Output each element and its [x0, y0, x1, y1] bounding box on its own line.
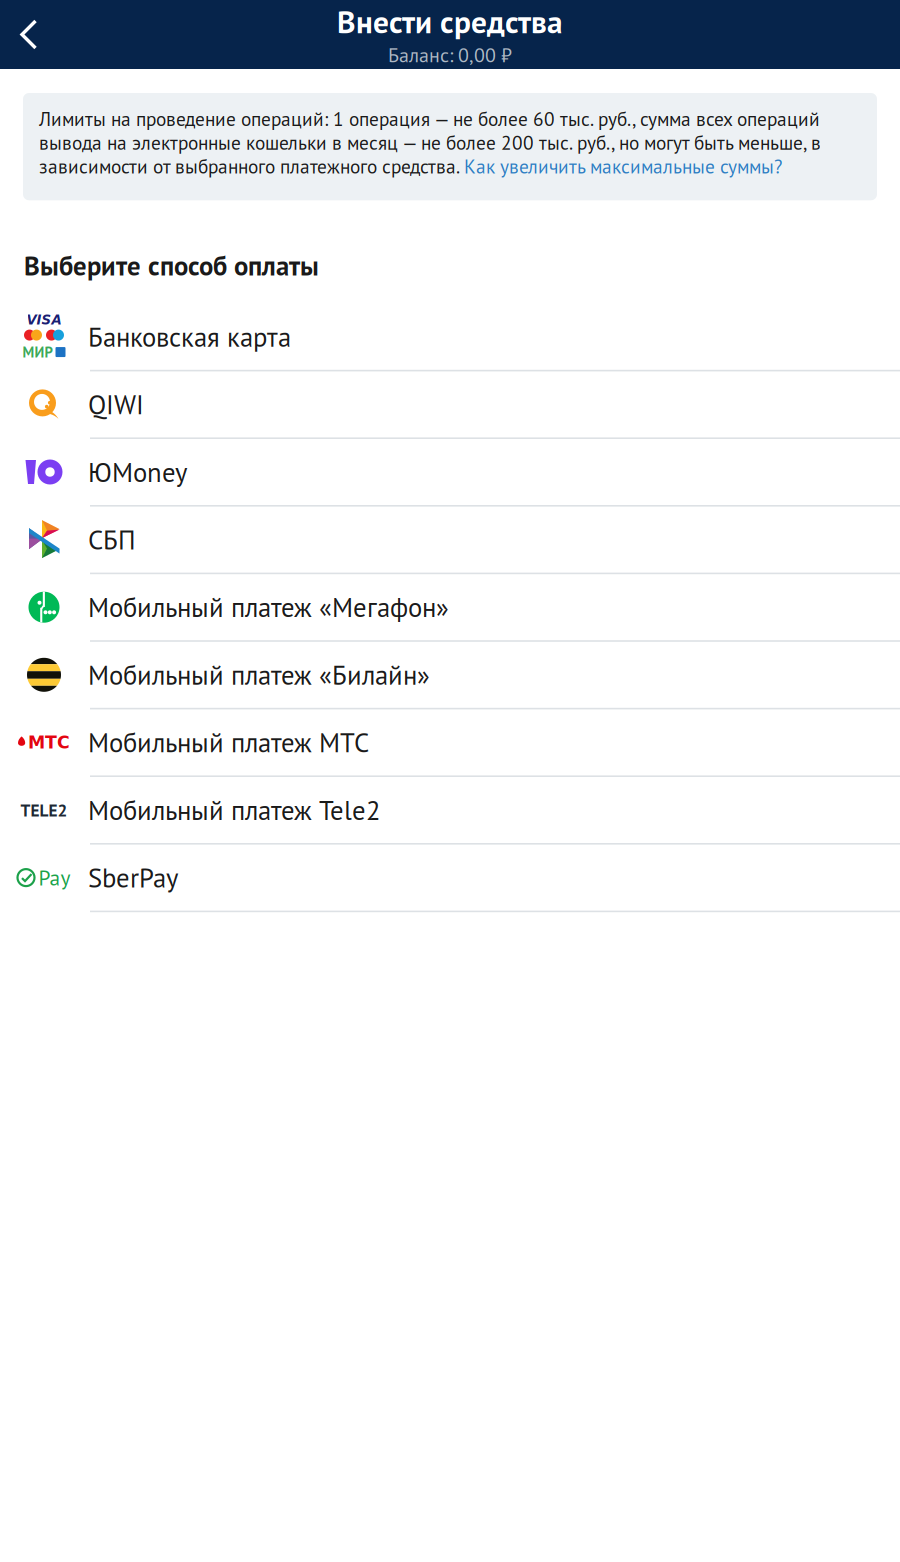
staticText: Внести средства [337, 1, 563, 42]
staticText: VISA [26, 312, 61, 328]
staticText: TELE2 [20, 799, 67, 821]
button[interactable]: TELE2 [0, 777, 900, 845]
staticText: Pay [38, 864, 70, 891]
button[interactable]: СБП [0, 507, 900, 574]
staticText: Лимиты на проведение операций: 1 операци… [39, 107, 821, 178]
button[interactable]: Back [0, 0, 58, 69]
staticText: СБП [88, 522, 136, 557]
staticText: Мобильный платеж Tele2 [88, 793, 381, 827]
staticText: МТС [28, 732, 70, 752]
staticText: Мобильный платеж «Билайн» [88, 658, 430, 692]
button[interactable]: QIWI [0, 371, 900, 439]
staticText: Мобильный платеж «Мегафон» [88, 590, 449, 624]
staticText: Баланс: 0,00 ₽ [388, 42, 512, 68]
button[interactable]: ЮMoney [0, 439, 900, 507]
button[interactable]: Pay [0, 845, 900, 912]
button[interactable]: VISA [0, 304, 900, 371]
staticText: Выберите способ оплаты [24, 248, 319, 283]
staticText: QIWI [88, 387, 144, 422]
staticText: SberPay [88, 860, 178, 895]
staticText: МИР [22, 343, 52, 362]
button[interactable]: МТС [0, 709, 900, 777]
button[interactable]: Мобильный платеж «Мегафон» [0, 574, 900, 642]
staticText: Мобильный платеж МТС [88, 725, 369, 760]
staticText: ЮMoney [88, 455, 187, 489]
button[interactable]: Мобильный платеж «Билайн» [0, 642, 900, 709]
staticText: Банковская карта [88, 320, 291, 354]
